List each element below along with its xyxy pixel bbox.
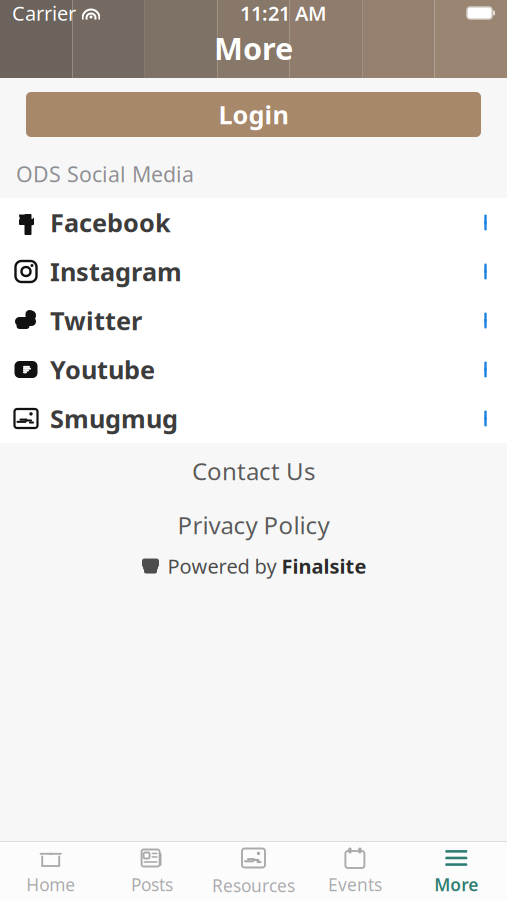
staticText: Instagram bbox=[50, 255, 182, 288]
button[interactable]: Instagram bbox=[0, 247, 507, 296]
button[interactable]: Posts bbox=[101, 842, 203, 900]
staticText: Finalsite bbox=[281, 553, 366, 579]
staticText: ODS Social Media bbox=[16, 160, 194, 188]
staticText: Facebook bbox=[50, 206, 171, 239]
staticText: Login bbox=[218, 98, 288, 131]
button[interactable]: Privacy Policy bbox=[0, 499, 507, 551]
staticText: Smugmug bbox=[50, 402, 178, 435]
staticText: Posts bbox=[131, 873, 173, 896]
button[interactable]: More bbox=[406, 842, 507, 900]
staticText: Privacy Policy bbox=[177, 509, 329, 541]
staticText: Powered by bbox=[167, 553, 276, 579]
button[interactable]: Contact Us bbox=[0, 443, 507, 499]
staticText: Events bbox=[328, 873, 382, 896]
staticText: Carrier bbox=[12, 0, 76, 26]
button[interactable]: Facebook bbox=[0, 198, 507, 247]
button[interactable]: Home bbox=[0, 842, 101, 900]
button[interactable]: Resources bbox=[203, 842, 304, 900]
button[interactable]: Smugmug bbox=[0, 394, 507, 443]
staticText: Resources bbox=[212, 874, 295, 897]
staticText: Youtube bbox=[50, 353, 155, 386]
staticText: 11:21 AM bbox=[240, 0, 327, 26]
staticText: More bbox=[434, 873, 478, 896]
staticText: Home bbox=[26, 873, 75, 896]
button[interactable]: Twitter bbox=[0, 296, 507, 345]
staticText: More bbox=[214, 28, 293, 68]
staticText: Contact Us bbox=[192, 455, 315, 487]
button[interactable]: Events bbox=[304, 842, 406, 900]
button[interactable]: Youtube bbox=[0, 345, 507, 394]
staticText: Twitter bbox=[50, 304, 142, 337]
button[interactable]: Login bbox=[26, 92, 481, 137]
